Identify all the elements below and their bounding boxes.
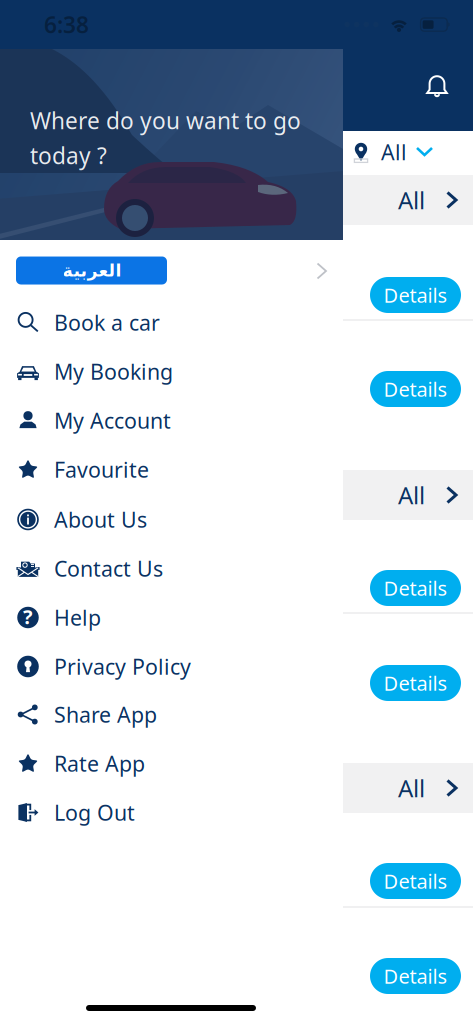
staticText: Details bbox=[383, 376, 447, 402]
staticText: All bbox=[398, 479, 425, 511]
staticText: About Us bbox=[54, 505, 147, 534]
staticText: Privacy Policy bbox=[54, 652, 191, 681]
button[interactable]: Details bbox=[370, 277, 461, 313]
staticText: All bbox=[381, 138, 407, 166]
staticText: My Account bbox=[54, 406, 171, 435]
staticText: Details bbox=[383, 282, 447, 308]
staticText: My Booking bbox=[54, 357, 173, 386]
button[interactable]: Details bbox=[370, 371, 461, 407]
button[interactable]: Share App bbox=[0, 690, 343, 739]
staticText: Details bbox=[383, 868, 447, 894]
staticText: Rate App bbox=[54, 749, 145, 778]
button[interactable]: Contact Us bbox=[0, 544, 343, 593]
button[interactable]: Privacy Policy bbox=[0, 642, 343, 691]
button[interactable]: Notifications bbox=[423, 72, 451, 100]
button[interactable]: Book a car bbox=[0, 298, 343, 347]
staticText: العربية bbox=[62, 261, 121, 280]
button[interactable]: All bbox=[0, 175, 473, 225]
staticText: Help bbox=[54, 603, 101, 632]
button[interactable]: ? bbox=[0, 593, 343, 642]
button[interactable]: About Us bbox=[0, 495, 343, 544]
button[interactable]: All bbox=[0, 763, 473, 813]
button[interactable]: All bbox=[0, 470, 473, 520]
staticText: Details bbox=[383, 575, 447, 601]
staticText: Log Out bbox=[54, 798, 135, 827]
button[interactable]: Rate App bbox=[0, 739, 343, 788]
staticText: All bbox=[398, 772, 425, 804]
button[interactable]: Details bbox=[370, 665, 461, 701]
staticText: Where do you want to go bbox=[30, 105, 301, 135]
button[interactable]: Log Out bbox=[0, 788, 343, 837]
staticText: Share App bbox=[54, 700, 157, 729]
staticText: Details bbox=[383, 963, 447, 989]
staticText: 6:38 bbox=[44, 9, 89, 39]
staticText: All bbox=[398, 184, 425, 216]
button[interactable]: Details bbox=[370, 570, 461, 606]
staticText: ? bbox=[23, 603, 33, 630]
staticText: Contact Us bbox=[54, 554, 163, 583]
button[interactable]: العربية bbox=[0, 240, 343, 298]
staticText: Details bbox=[383, 670, 447, 696]
staticText: today ? bbox=[30, 140, 107, 171]
button[interactable]: My Booking bbox=[0, 347, 343, 396]
button[interactable]: Details bbox=[370, 863, 461, 899]
button[interactable]: Favourite bbox=[0, 445, 343, 494]
button[interactable]: My Account bbox=[0, 396, 343, 445]
button[interactable]: Details bbox=[370, 958, 461, 994]
staticText: Book a car bbox=[54, 308, 160, 337]
staticText: Favourite bbox=[54, 455, 149, 484]
